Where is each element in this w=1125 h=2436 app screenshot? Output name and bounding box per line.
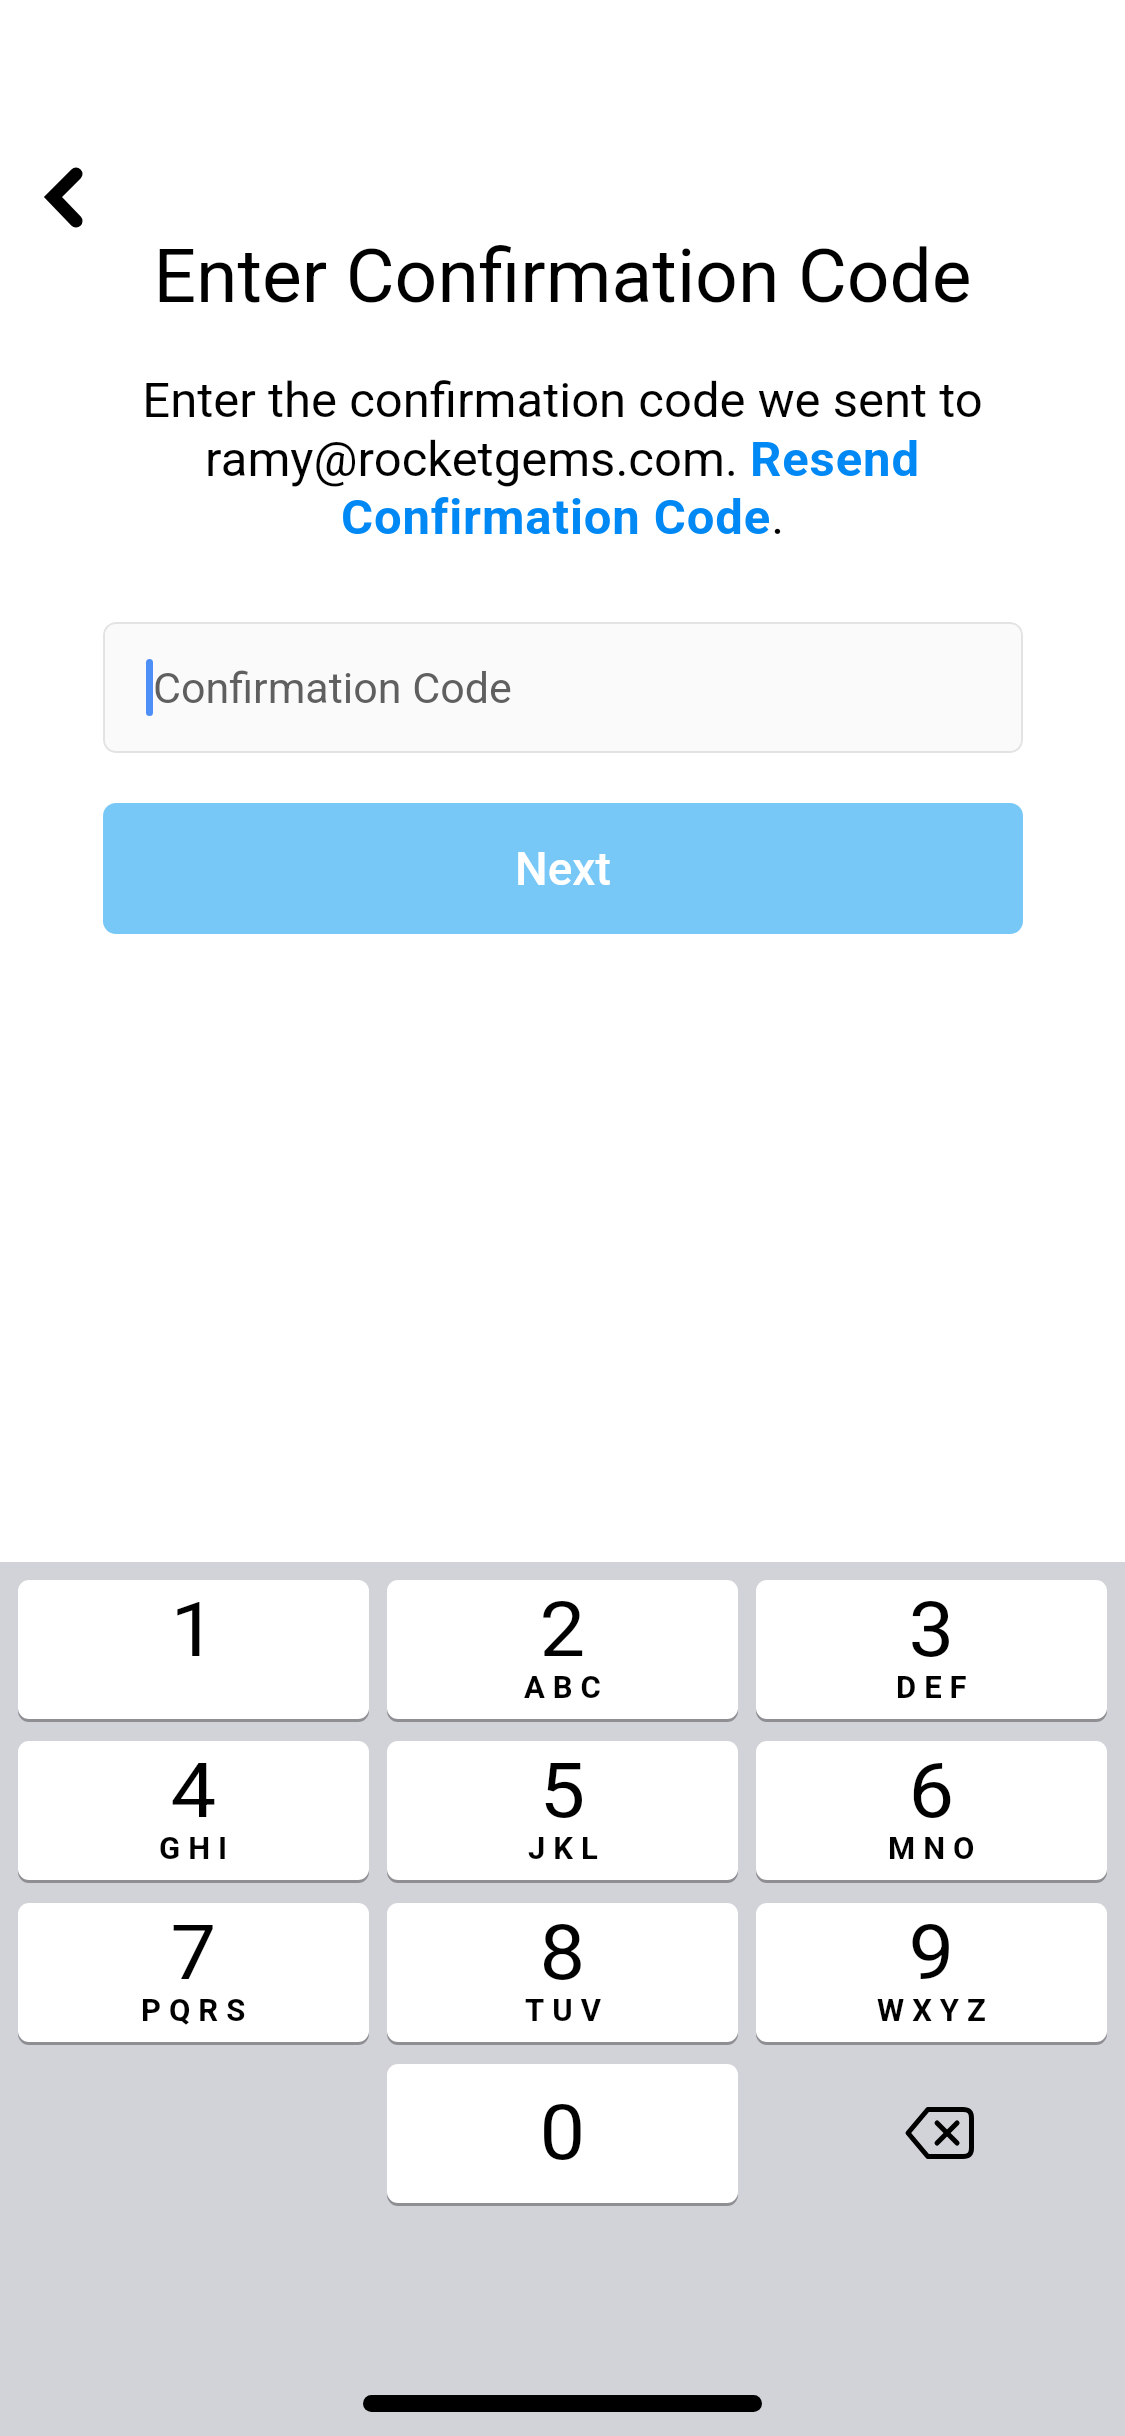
staticText: 7: [170, 1908, 216, 1997]
staticText: 4: [170, 1746, 216, 1835]
staticText: 5: [539, 1746, 585, 1835]
staticText: 2: [539, 1585, 585, 1674]
button[interactable]: 6: [756, 1741, 1107, 1880]
button[interactable]: Confirmation Code: [103, 622, 1023, 753]
staticText: Enter the confirmation code we sent to r…: [68, 372, 1057, 546]
staticText: Confirmation Code: [153, 663, 512, 713]
staticText: ABC: [524, 1669, 609, 1705]
button[interactable]: 2: [387, 1580, 738, 1719]
button[interactable]: Next: [103, 803, 1023, 934]
staticText: 3: [908, 1585, 954, 1674]
button[interactable]: 3: [756, 1580, 1107, 1719]
button[interactable]: 5: [387, 1741, 738, 1880]
staticText: TUV: [525, 1992, 609, 2028]
staticText: 8: [539, 1908, 585, 1997]
staticText: 9: [908, 1908, 954, 1997]
button[interactable]: 0: [387, 2064, 738, 2203]
button[interactable]: 7: [18, 1903, 369, 2042]
button[interactable]: 1: [18, 1580, 369, 1719]
staticText: GHI: [159, 1830, 236, 1866]
staticText: JKL: [528, 1830, 606, 1866]
button[interactable]: Backspace: [756, 2064, 1107, 2203]
staticText: 6: [908, 1746, 954, 1835]
staticText: WXYZ: [877, 1992, 994, 2028]
staticText: 1: [170, 1585, 216, 1674]
button[interactable]: 9: [756, 1903, 1107, 2042]
staticText: Next: [515, 842, 611, 896]
staticText: Enter Confirmation Code: [0, 232, 1125, 320]
button[interactable]: Back: [10, 130, 120, 240]
button[interactable]: 4: [18, 1741, 369, 1880]
staticText: PQRS: [141, 1992, 254, 2028]
staticText: MNO: [888, 1830, 983, 1866]
button[interactable]: 8: [387, 1903, 738, 2042]
staticText: DEF: [896, 1669, 975, 1705]
staticText: 0: [539, 2088, 585, 2177]
